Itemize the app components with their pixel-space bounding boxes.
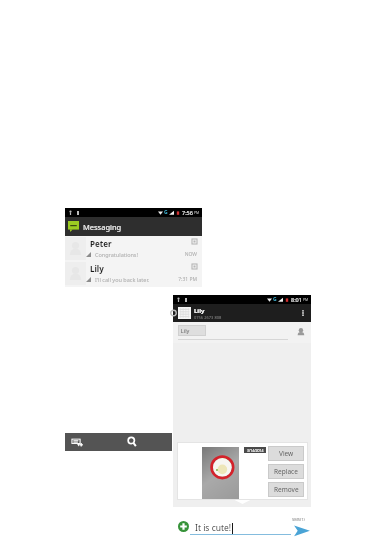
button[interactable]: More options [298,308,308,318]
button[interactable]: Messaging [65,217,202,236]
staticText: Replace [274,467,298,476]
staticText: Messaging [83,222,122,232]
button[interactable]: Replace [268,464,304,479]
staticText: Lily [90,263,104,274]
button[interactable]: Add attachment [178,521,189,532]
staticText: SMS(1) [292,517,305,522]
staticText: 7:56 [182,209,193,216]
button[interactable]: Add contact [296,327,307,338]
staticText: PM [194,210,200,215]
button[interactable]: Send [293,524,311,538]
button[interactable]: Remove [268,482,304,497]
button[interactable]: Lily [65,261,202,286]
staticText: NOW [166,251,197,258]
staticText: 8:01 [291,296,302,303]
staticText: Remove [274,485,299,494]
staticText: Lily [194,307,205,315]
staticText: G [273,296,277,303]
button[interactable]: Back [173,304,178,322]
staticText: Congratulations! [95,251,138,258]
button[interactable]: Search [126,436,138,448]
staticText: PM [303,297,309,302]
staticText: It is cute! [195,522,232,534]
staticText: View [279,449,294,458]
button[interactable]: Peter [65,236,202,261]
staticText: I'll call you back later. [95,276,150,283]
staticText: 3/14/2014 [247,448,264,453]
button[interactable]: View [268,446,304,461]
staticText: Peter [90,238,112,249]
staticText: G [164,209,168,216]
staticText: 0756 2673 808 [194,315,222,320]
staticText: Lily [178,327,190,334]
button[interactable]: New message [70,435,84,449]
staticText: 7:31 PM [166,276,197,283]
